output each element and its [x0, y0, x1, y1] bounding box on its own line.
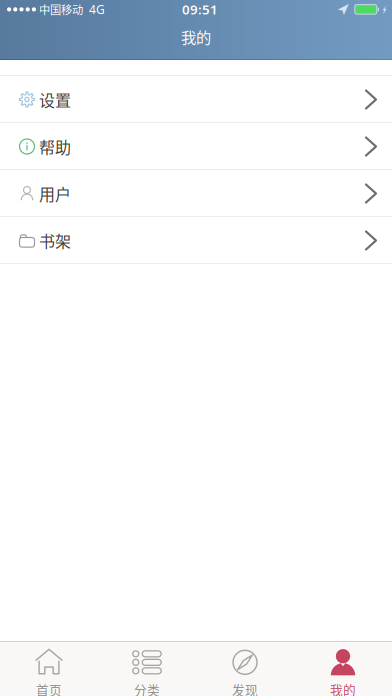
- staticText: 分类: [134, 680, 160, 696]
- button[interactable]: 帮助: [0, 123, 392, 170]
- staticText: 书架: [39, 229, 71, 252]
- staticText: 帮助: [39, 135, 71, 158]
- button[interactable]: 分类: [98, 639, 196, 696]
- button[interactable]: 设置: [0, 76, 392, 123]
- button[interactable]: 用户: [0, 170, 392, 217]
- staticText: 用户: [39, 182, 71, 205]
- staticText: 09:51: [182, 0, 218, 18]
- staticText: 我的: [181, 25, 211, 48]
- button[interactable]: 首页: [0, 639, 98, 696]
- staticText: 中国移动: [39, 1, 83, 18]
- staticText: 发现: [232, 680, 258, 696]
- staticText: 首页: [36, 680, 62, 696]
- button[interactable]: 书架: [0, 217, 392, 264]
- button[interactable]: 我的: [294, 639, 392, 696]
- staticText: 我的: [330, 680, 356, 696]
- staticText: 4G: [89, 1, 105, 17]
- button[interactable]: 发现: [196, 639, 294, 696]
- staticText: 设置: [39, 88, 71, 111]
